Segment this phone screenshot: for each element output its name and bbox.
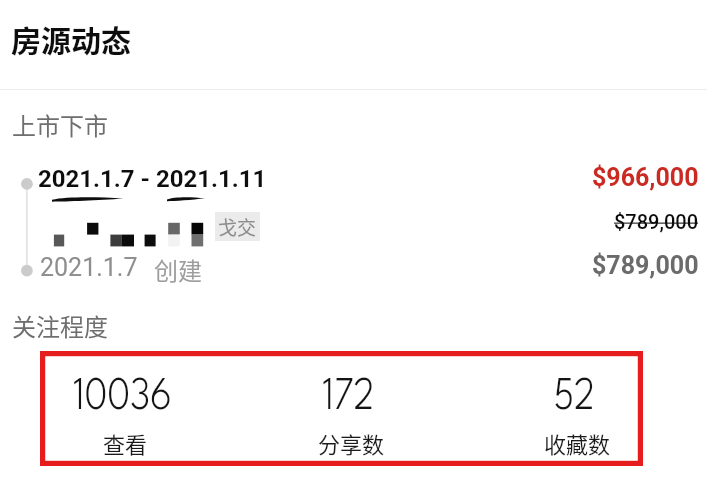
staticText: 分享数 xyxy=(318,427,385,459)
staticText: 2021.1.7 xyxy=(40,253,138,282)
staticText: 上市下市 xyxy=(12,107,108,142)
button[interactable]: 10036 xyxy=(10,351,235,466)
staticText: 10036 xyxy=(73,377,172,419)
staticText: 创建 xyxy=(154,252,202,287)
staticText: 关注程度 xyxy=(12,308,108,343)
button[interactable]: 房源动态 xyxy=(0,0,707,89)
staticText: $966,000 xyxy=(592,163,699,192)
staticText: 52 xyxy=(553,377,595,419)
staticText: $789,000 xyxy=(614,210,699,233)
staticText: 戈交 xyxy=(218,213,257,241)
staticText: 查看 xyxy=(103,427,148,459)
button[interactable]: 2021.1.7 - 2021.1.11 xyxy=(36,160,707,246)
button[interactable]: 172 xyxy=(235,351,461,466)
staticText: 房源动态 xyxy=(11,17,131,60)
staticText: 收藏数 xyxy=(544,427,611,459)
other: Hidden details xyxy=(50,218,210,248)
button[interactable]: 2021.1.7 xyxy=(36,248,707,288)
other: Timeline xyxy=(20,176,34,277)
staticText: $789,000 xyxy=(592,251,699,280)
staticText: 2021.1.7 - 2021.1.11 xyxy=(38,165,267,193)
button[interactable]: 戈交 xyxy=(215,212,260,241)
button[interactable]: 52 xyxy=(461,351,687,466)
staticText: 172 xyxy=(322,377,375,419)
